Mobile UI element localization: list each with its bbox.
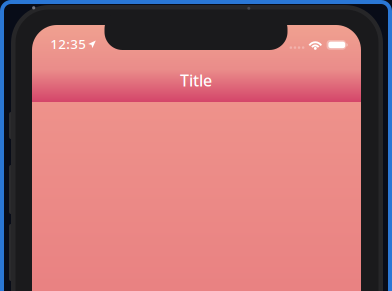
staticText: 12:35 bbox=[50, 35, 86, 53]
staticText: Title bbox=[180, 70, 212, 91]
